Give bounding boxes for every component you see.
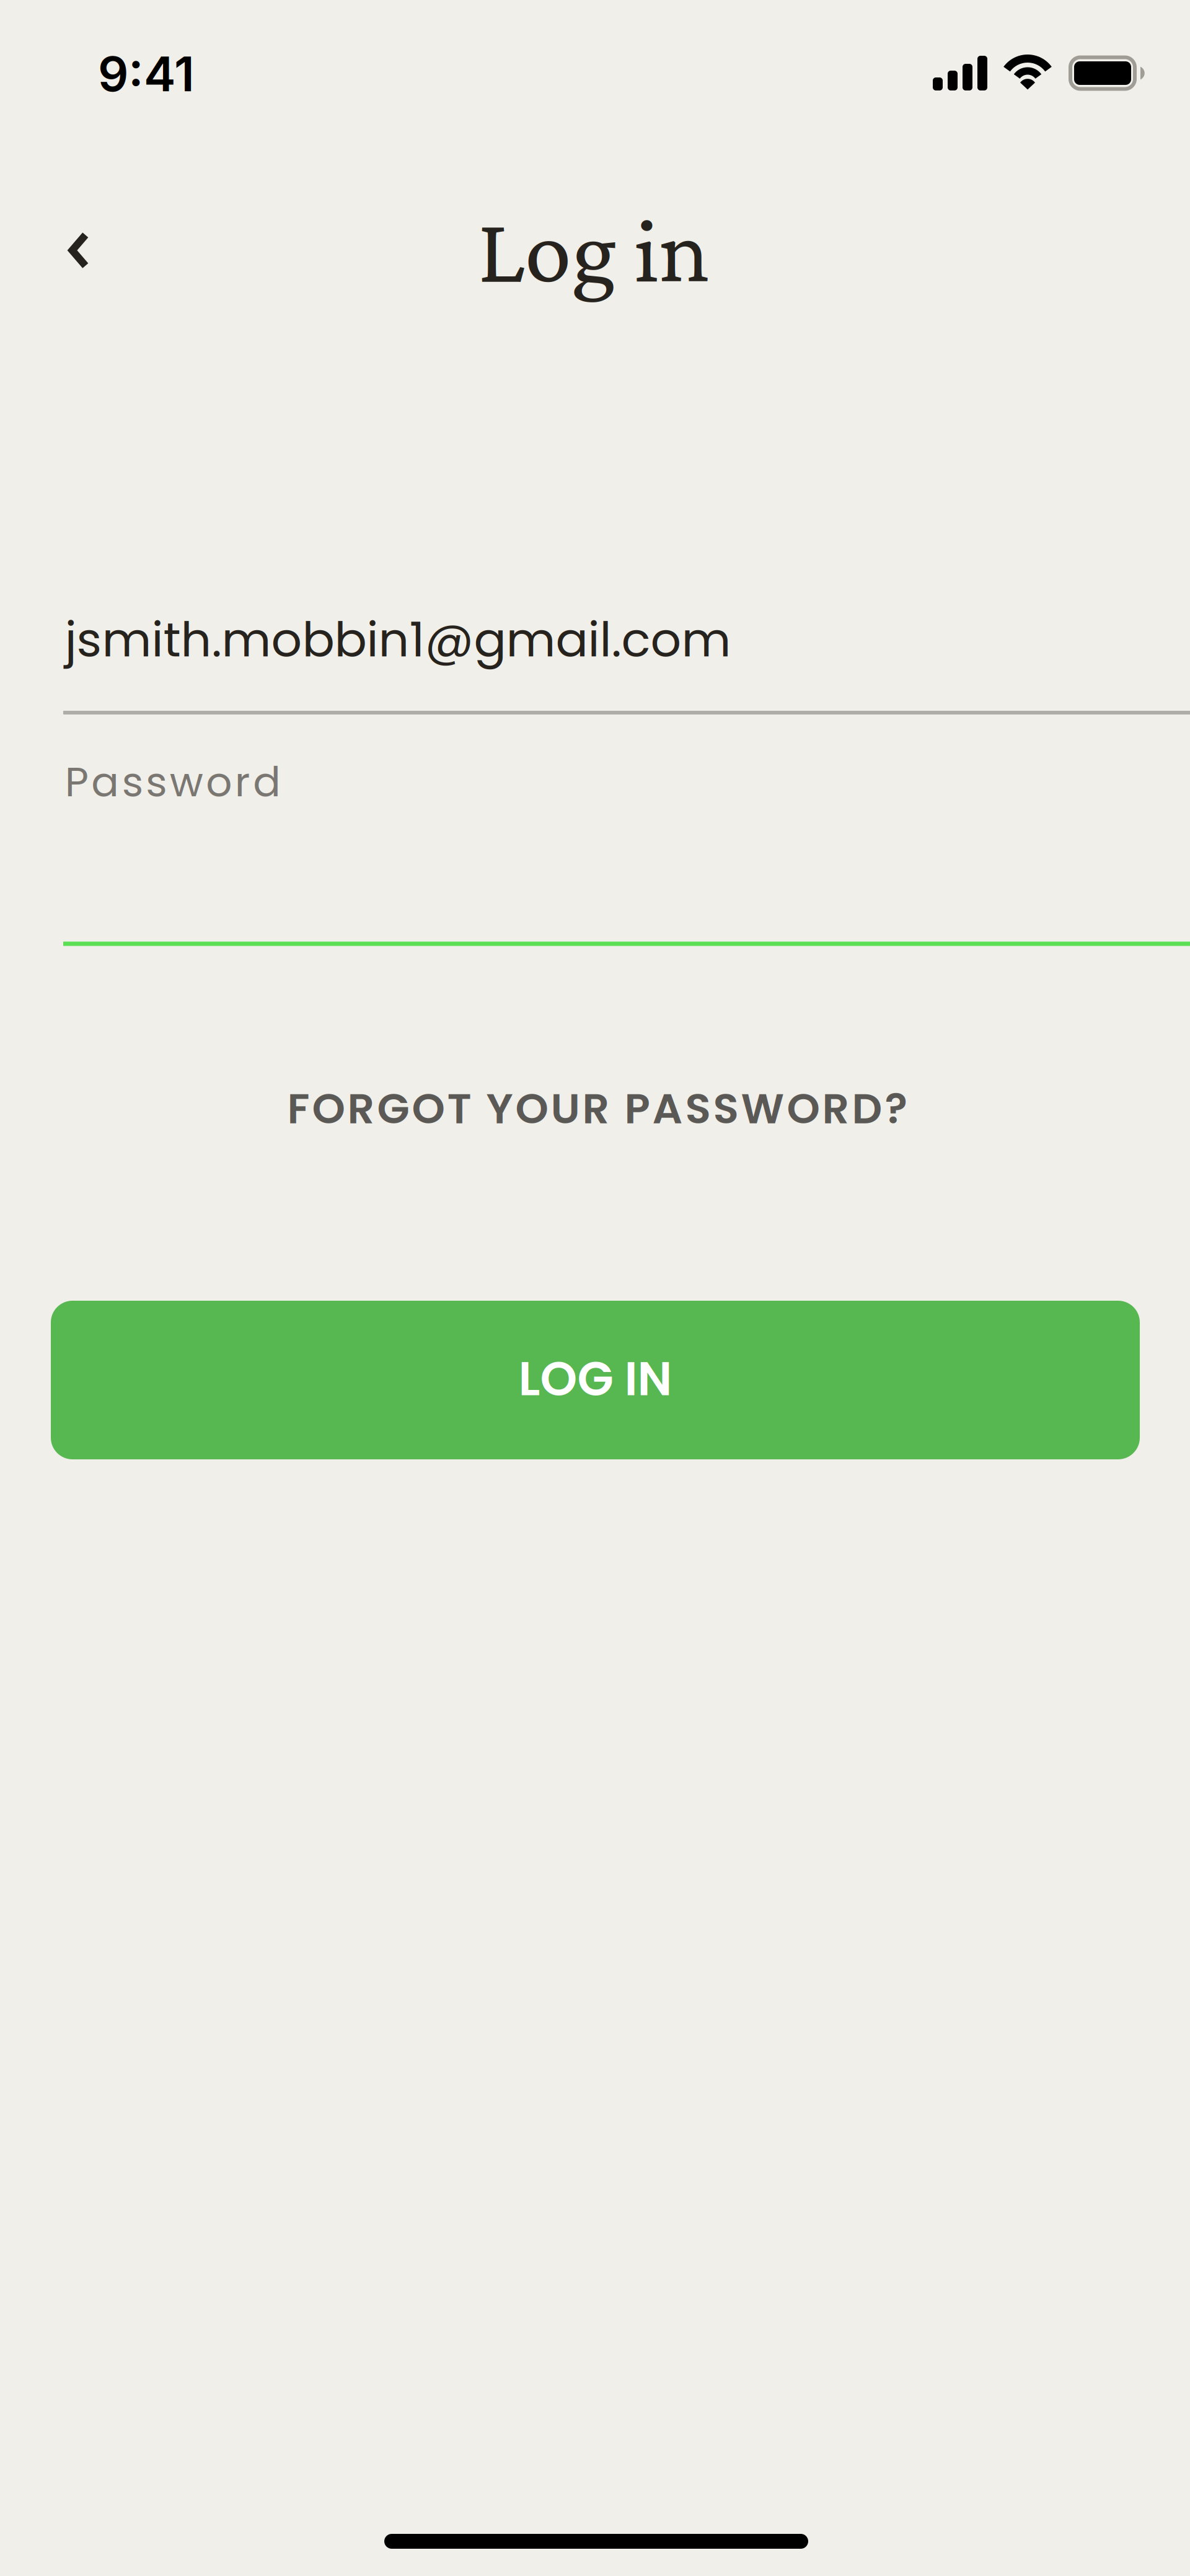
button[interactable]: FORGOT YOUR PASSWORD? [195, 1071, 1000, 1146]
staticText: Log in [478, 197, 710, 301]
button[interactable]: Password [63, 732, 1190, 943]
staticText: LOG IN [518, 1346, 672, 1412]
button[interactable]: Email, jsmith.mobbin1@gmail.com [63, 569, 1190, 730]
button[interactable]: Back [37, 209, 118, 291]
staticText: FORGOT YOUR PASSWORD? [287, 1079, 908, 1138]
staticText: Password [65, 753, 281, 811]
button[interactable]: LOG IN [51, 1301, 1140, 1459]
staticText: 9:41 [98, 45, 195, 103]
staticText: jsmith.mobbin1@gmail.com [65, 606, 731, 673]
